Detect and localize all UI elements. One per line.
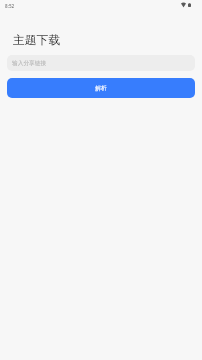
staticText: 8:52 <box>5 3 15 9</box>
other: Wi-Fi <box>181 3 186 7</box>
staticText: 解析 <box>95 85 107 92</box>
button[interactable]: 输入分享链接 <box>7 55 195 71</box>
button[interactable]: 解析 <box>7 78 195 98</box>
staticText: 主题下载 <box>13 33 61 48</box>
staticText: 输入分享链接 <box>12 60 47 67</box>
other: Battery <box>188 3 191 7</box>
